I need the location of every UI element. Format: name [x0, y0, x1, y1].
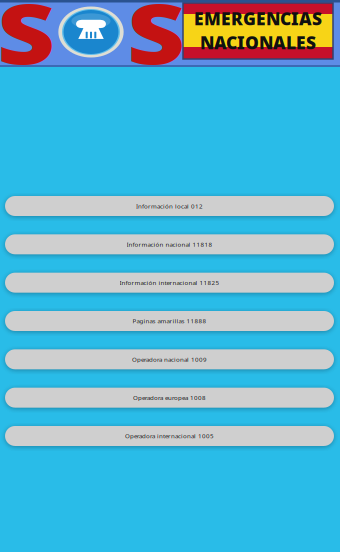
- staticText: NACIONALES: [200, 31, 316, 54]
- staticText: Información local 012: [136, 202, 203, 210]
- button[interactable]: Información nacional 11818: [5, 234, 334, 254]
- staticText: Paginas amarillas 11888: [132, 317, 206, 325]
- staticText: Operadora nacional 1009: [132, 355, 207, 363]
- staticText: EMERGENCIAS: [194, 7, 322, 30]
- staticText: Información internacional 11825: [119, 278, 219, 287]
- staticText: Información nacional 11818: [126, 240, 212, 249]
- button[interactable]: Operadora internacional 1005: [5, 426, 334, 446]
- staticText: Operadora europea 1008: [133, 393, 206, 402]
- staticText: S: [131, 0, 180, 89]
- button[interactable]: Información internacional 11825: [5, 273, 334, 293]
- button[interactable]: Operadora nacional 1009: [5, 349, 334, 369]
- button[interactable]: Operadora europea 1008: [5, 388, 334, 408]
- button[interactable]: Paginas amarillas 11888: [5, 311, 334, 331]
- staticText: S: [1, 0, 50, 89]
- button[interactable]: Información local 012: [5, 196, 334, 216]
- staticText: Operadora internacional 1005: [125, 432, 214, 440]
